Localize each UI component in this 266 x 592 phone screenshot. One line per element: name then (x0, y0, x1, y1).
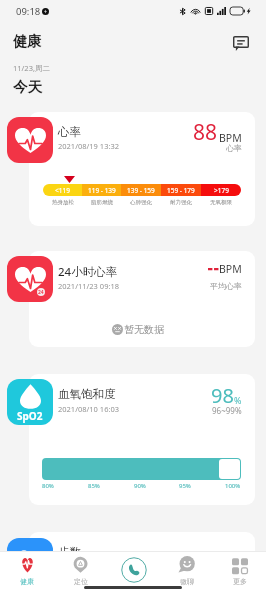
staticText: 耐力强化 (170, 199, 192, 206)
staticText: 健康 (20, 577, 34, 586)
button[interactable]: 心率 (29, 112, 255, 226)
staticText: 24 (38, 289, 44, 296)
button[interactable]: 健康 (0, 551, 54, 592)
staticText: 暂无数据 (124, 323, 164, 336)
staticText: 98 (211, 382, 234, 409)
staticText: 更多 (233, 577, 247, 586)
staticText: 血氧饱和度 (58, 387, 116, 401)
staticText: 今天 (13, 78, 42, 96)
staticText: 心率 (226, 143, 242, 153)
staticText: BPM (219, 262, 242, 276)
staticText: 2021/11/23 09:18 (58, 281, 120, 291)
staticText: 24小时心率 (58, 264, 118, 280)
staticText: BPM (219, 131, 242, 145)
staticText: 11/23,周二 (13, 63, 50, 73)
staticText: 无氧极限 (210, 199, 232, 206)
staticText: 100% (225, 482, 241, 490)
staticText: 09:18 (16, 5, 41, 18)
staticText: 88 (193, 118, 218, 147)
staticText: 119 - 139 (88, 186, 116, 195)
staticText: 96~99% (212, 405, 242, 416)
staticText: 热身放松 (52, 199, 74, 206)
staticText: 心率 (58, 125, 81, 139)
staticText: 脂肪燃烧 (91, 199, 113, 206)
staticText: 159 - 179 (167, 186, 195, 195)
staticText: 85% (88, 482, 100, 490)
staticText: 微聊 (180, 577, 194, 586)
button[interactable]: 定位 (54, 551, 107, 592)
staticText: >179 (214, 186, 229, 195)
button[interactable]: 微聊 (160, 551, 213, 592)
staticText: 90% (134, 482, 146, 490)
staticText: 步数 (58, 545, 81, 559)
staticText: 139 - 159 (127, 186, 155, 195)
button[interactable]: 步数 (29, 532, 255, 562)
staticText: 2021/08/19 13:32 (58, 141, 120, 151)
staticText: 健康 (13, 33, 41, 51)
staticText: 心肺强化 (130, 199, 152, 206)
button[interactable]: Messages (228, 30, 254, 56)
button[interactable]: Call (107, 551, 160, 592)
staticText: 95% (179, 482, 191, 490)
button[interactable]: 血氧饱和度 (29, 374, 255, 505)
staticText: % (234, 394, 242, 406)
button[interactable]: 24小时心率 (29, 251, 255, 347)
staticText: <119 (55, 186, 70, 195)
staticText: 定位 (74, 577, 88, 586)
staticText: 2021/08/10 16:03 (58, 404, 120, 414)
staticText: 80% (42, 482, 54, 490)
button[interactable]: 更多 (213, 551, 266, 592)
staticText: 平均心率 (210, 281, 242, 291)
staticText: SpO2 (17, 409, 43, 423)
